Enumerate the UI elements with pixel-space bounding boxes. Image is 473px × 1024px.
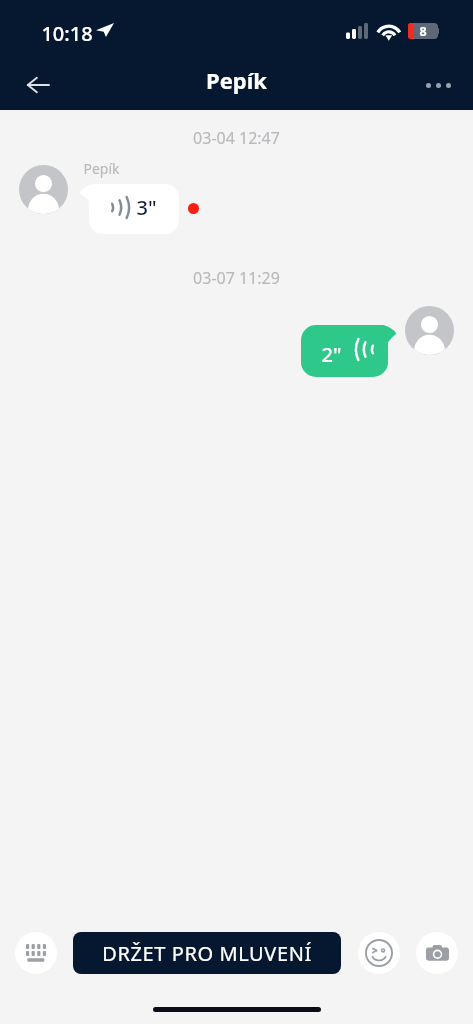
staticText: Pepík — [206, 65, 267, 95]
button[interactable]: Play voice message, 2 seconds — [301, 325, 397, 377]
staticText: DRŽET PRO MLUVENÍ — [102, 940, 312, 967]
button[interactable]: Play voice message, 3 seconds — [79, 184, 179, 234]
button[interactable]: DRŽET PRO MLUVENÍ — [73, 932, 341, 974]
button[interactable]: More options — [415, 62, 461, 108]
staticText: 10:18 — [41, 20, 93, 47]
staticText: Pepík — [83, 159, 120, 178]
button[interactable]: Emoji — [358, 932, 400, 974]
staticText: 03-07 11:29 — [193, 267, 280, 289]
button[interactable]: Back — [15, 62, 61, 108]
staticText: 3" — [136, 194, 157, 221]
staticText: 03-04 12:47 — [193, 127, 280, 149]
staticText: 8 — [419, 23, 427, 39]
staticText: 2" — [321, 341, 342, 368]
button[interactable]: Camera — [416, 932, 458, 974]
button[interactable]: Keyboard — [15, 932, 57, 974]
